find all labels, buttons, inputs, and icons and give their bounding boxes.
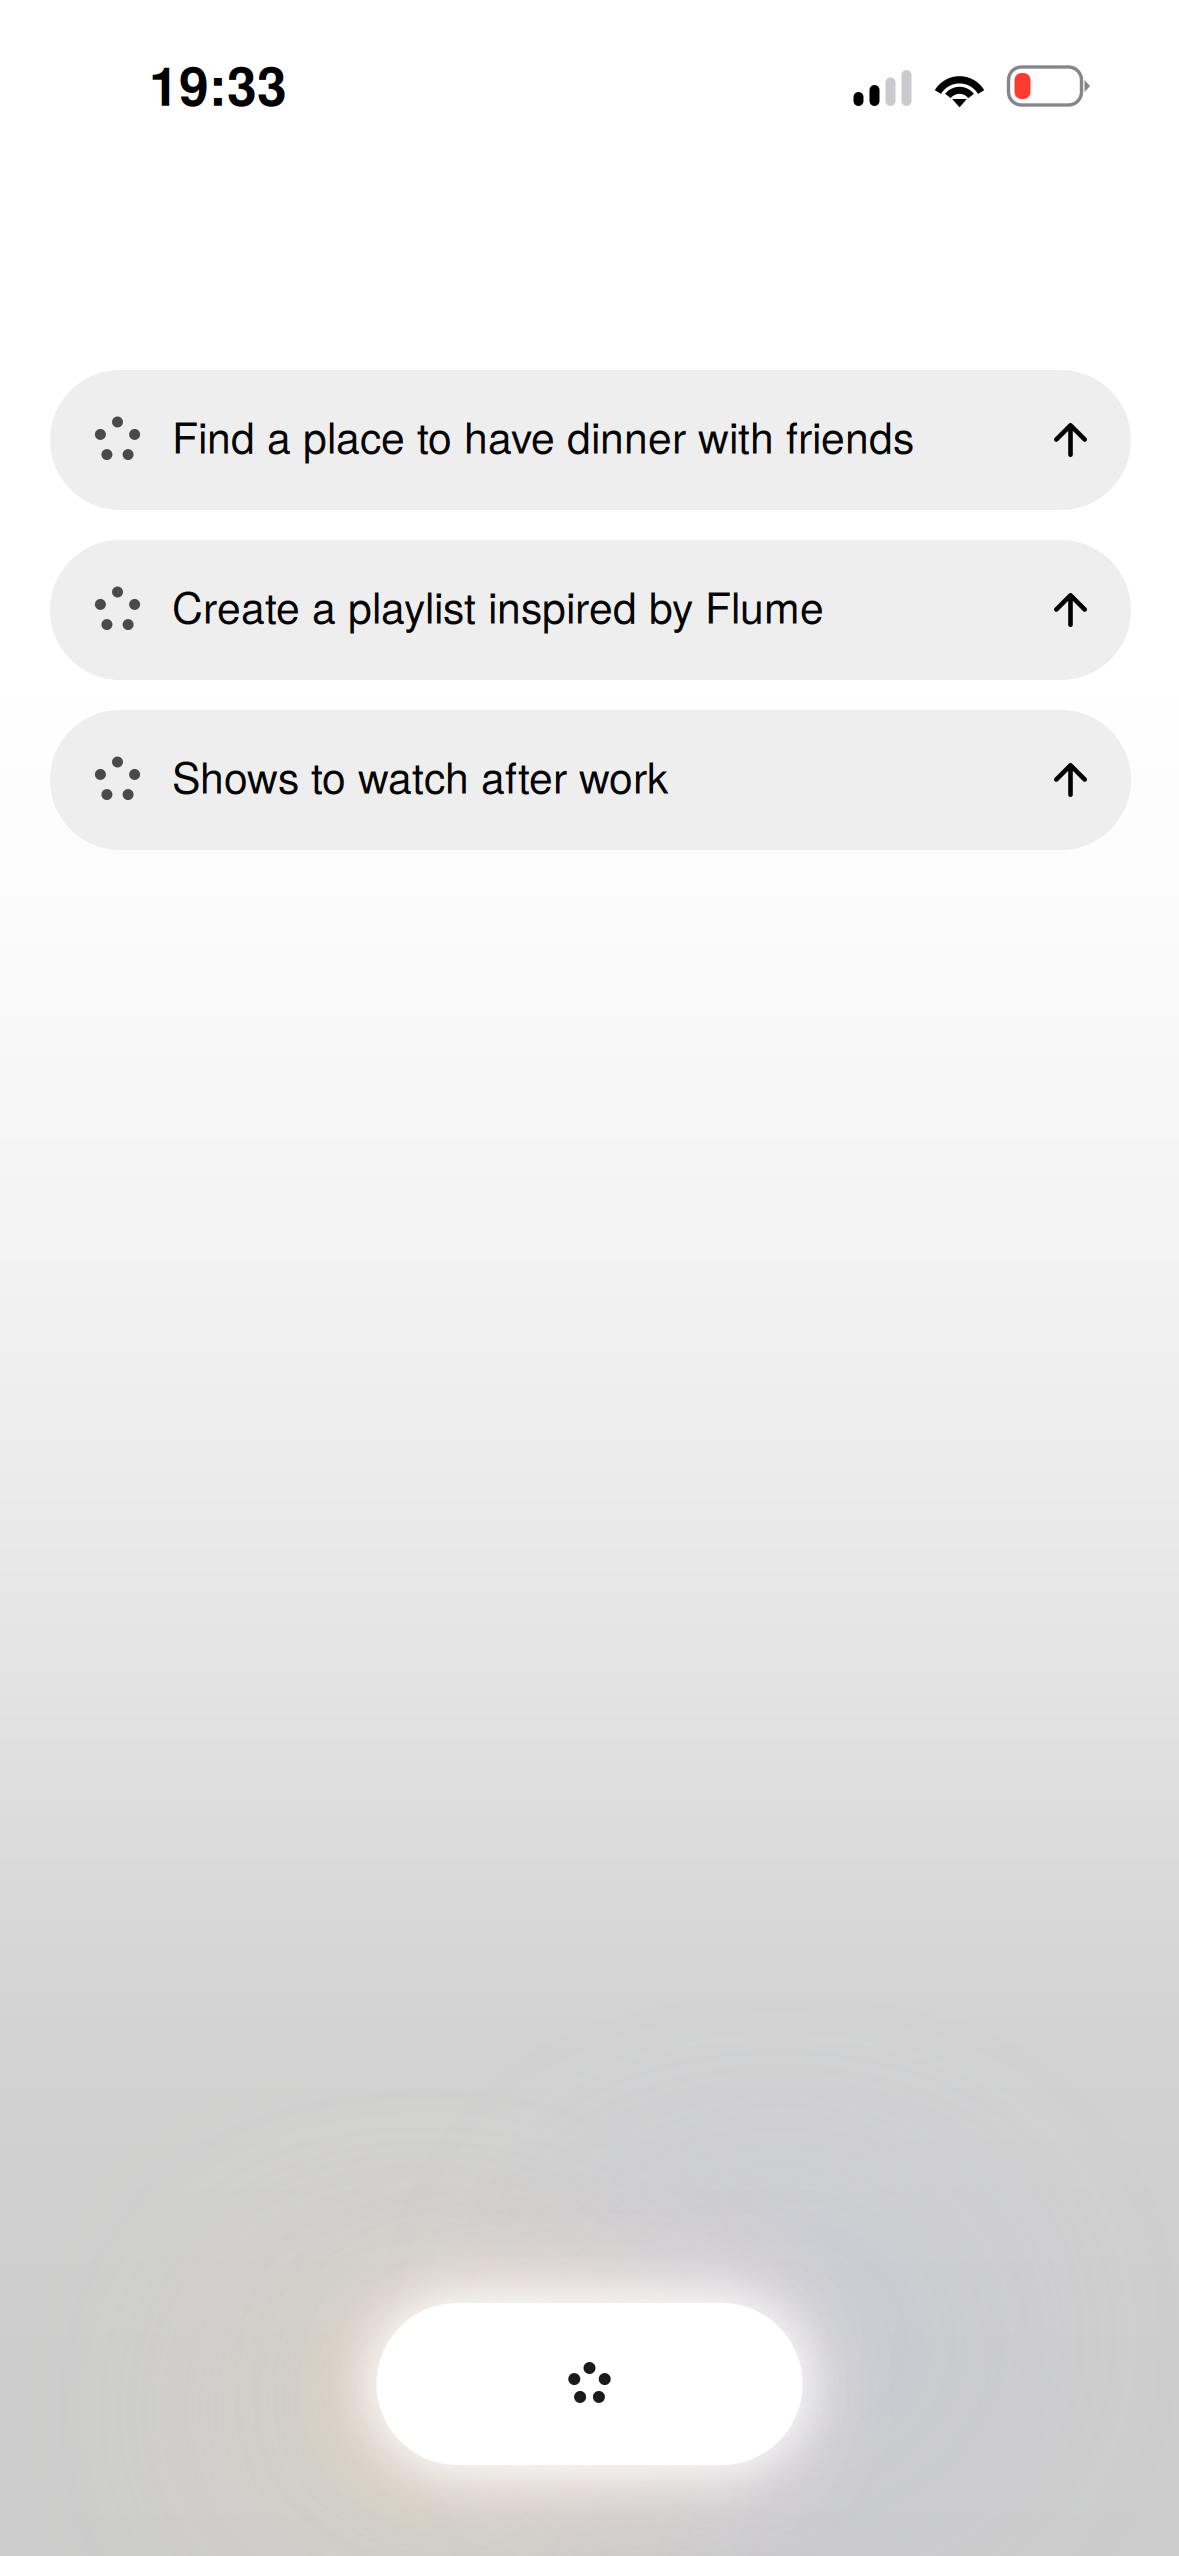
button[interactable]: Shows to watch after work [50,710,1131,850]
button[interactable]: Siri [376,2303,802,2465]
staticText: 19:33 [149,46,287,122]
button[interactable]: Find a place to have dinner with friends [50,370,1131,510]
button[interactable]: Create a playlist inspired by Flume [50,540,1131,680]
staticText: Shows to watch after work [172,744,668,806]
staticText: Find a place to have dinner with friends [172,404,914,466]
staticText: Create a playlist inspired by Flume [172,574,824,636]
